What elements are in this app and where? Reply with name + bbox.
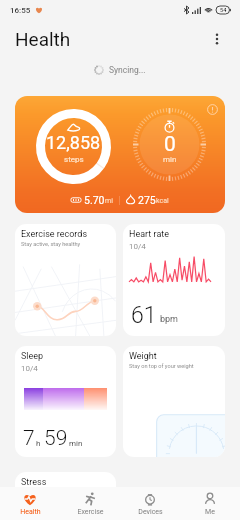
- staticText: 59: [44, 426, 68, 451]
- staticText: 54: [220, 7, 227, 13]
- button[interactable]: Weight: [123, 346, 225, 457]
- button[interactable]: More options: [204, 26, 230, 52]
- staticText: 0: [164, 132, 176, 157]
- staticText: Stay active, stay healthy: [21, 241, 81, 248]
- staticText: 275: [138, 194, 156, 206]
- staticText: min: [163, 155, 177, 164]
- staticText: kcal: [156, 197, 169, 205]
- staticText: steps: [64, 155, 84, 164]
- staticText: Syncing...: [109, 65, 146, 75]
- staticText: Weight: [129, 351, 157, 362]
- staticText: Health: [15, 28, 71, 50]
- button[interactable]: Devices: [120, 487, 180, 520]
- staticText: Heart rate: [129, 229, 170, 240]
- staticText: mi: [105, 197, 113, 205]
- staticText: 61: [131, 302, 157, 329]
- staticText: Health: [20, 508, 41, 516]
- staticText: bpm: [160, 314, 178, 325]
- staticText: 16:55: [10, 6, 31, 15]
- button[interactable]: Stress: [15, 472, 116, 520]
- button[interactable]: Exercise: [60, 487, 120, 520]
- staticText: Stay on top of your weight: [129, 363, 194, 370]
- staticText: 12,858: [46, 132, 101, 153]
- staticText: Exercise records: [21, 229, 88, 240]
- button[interactable]: Info: [204, 101, 220, 117]
- button[interactable]: Me: [180, 487, 240, 520]
- staticText: Sleep: [21, 351, 44, 362]
- staticText: h: [36, 439, 41, 448]
- staticText: 5.70: [84, 194, 105, 206]
- staticText: Devices: [138, 508, 163, 516]
- button[interactable]: Sleep: [15, 346, 116, 457]
- button[interactable]: Heart rate: [123, 224, 225, 336]
- staticText: 7: [23, 426, 35, 451]
- staticText: 10/4: [21, 364, 38, 373]
- button[interactable]: Info: [15, 96, 225, 213]
- staticText: Stress: [21, 477, 47, 488]
- staticText: Exercise: [77, 508, 104, 516]
- staticText: 10/4: [129, 242, 146, 251]
- staticText: min: [69, 439, 83, 448]
- button[interactable]: Health: [0, 487, 60, 520]
- button[interactable]: Exercise records: [15, 224, 116, 336]
- staticText: Me: [205, 508, 215, 516]
